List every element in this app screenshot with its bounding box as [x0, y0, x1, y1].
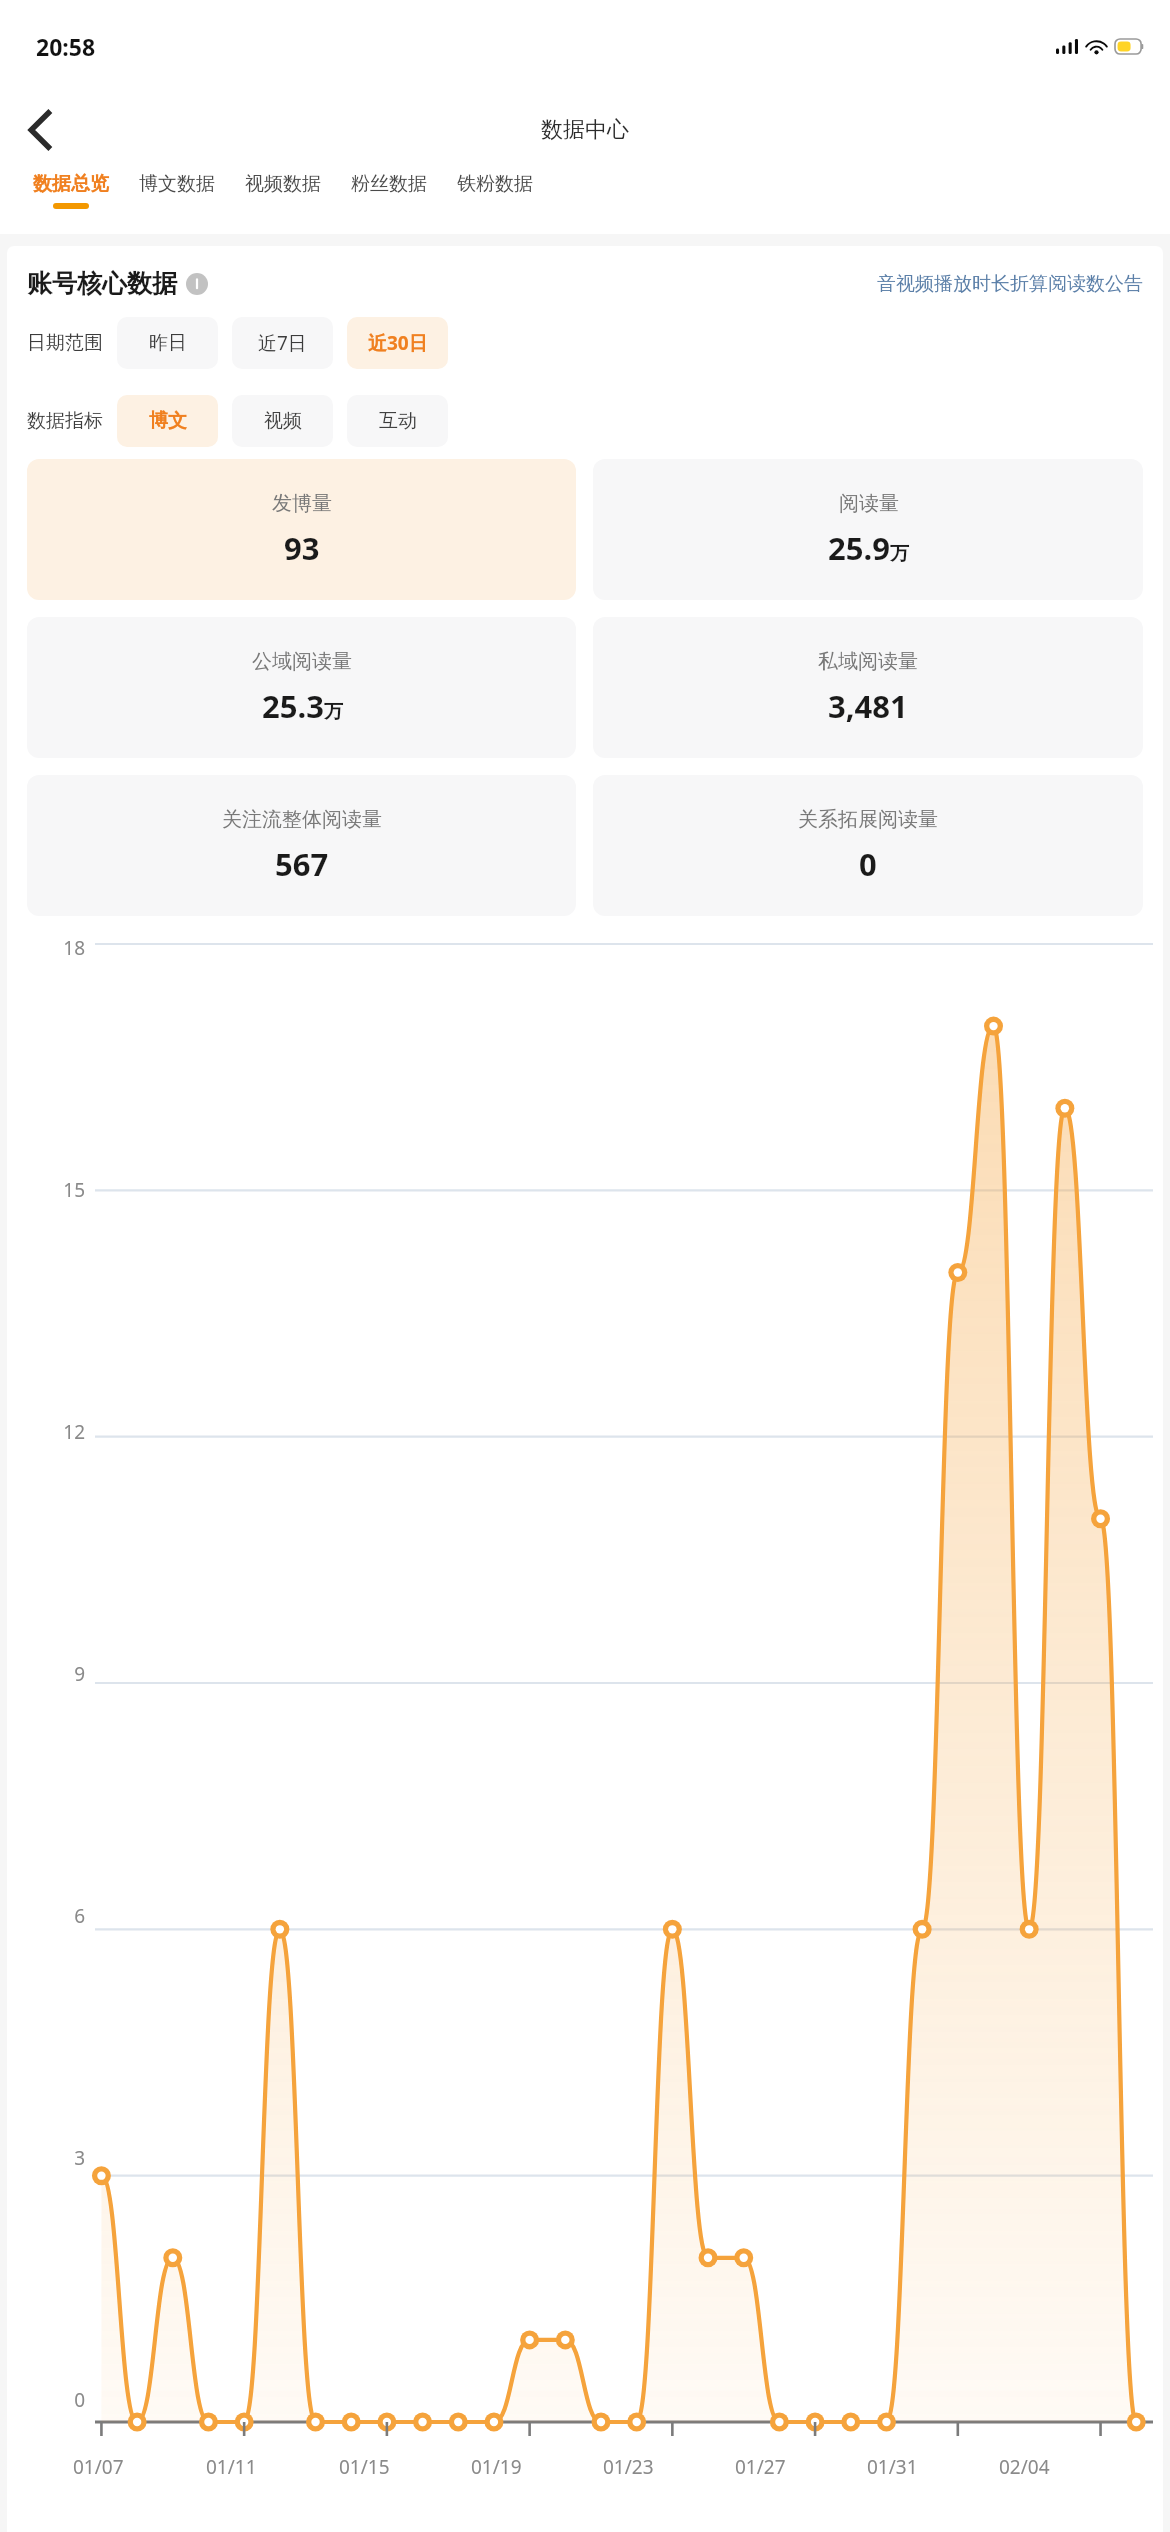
- staticText: 账号核心数据: [27, 268, 177, 299]
- staticText: 0: [859, 843, 877, 885]
- staticText: 25.3: [262, 685, 324, 727]
- staticText: 阅读量: [839, 491, 899, 516]
- button[interactable]: 发博量: [27, 459, 576, 600]
- staticText: 02/04: [999, 2454, 1050, 2480]
- staticText: 01/11: [206, 2454, 257, 2480]
- staticText: 近30日: [368, 330, 428, 356]
- button[interactable]: 阅读量: [593, 459, 1143, 600]
- button[interactable]: 互动: [347, 395, 448, 447]
- staticText: 12: [63, 1419, 85, 1445]
- button[interactable]: 博文: [117, 395, 218, 447]
- staticText: 关注流整体阅读量: [222, 807, 382, 832]
- staticText: 3: [74, 2145, 85, 2171]
- staticText: 567: [275, 843, 329, 885]
- staticText: 01/15: [339, 2454, 390, 2480]
- button[interactable]: 昨日: [117, 317, 218, 369]
- staticText: 视频数据: [245, 172, 321, 196]
- button[interactable]: 数据总览: [18, 172, 124, 209]
- staticText: 01/23: [603, 2454, 654, 2480]
- staticText: 20:58: [36, 31, 96, 62]
- staticText: 01/19: [471, 2454, 522, 2480]
- staticText: 公域阅读量: [252, 649, 352, 674]
- button[interactable]: 铁粉数据: [442, 172, 548, 203]
- staticText: 0: [74, 2387, 85, 2413]
- staticText: 私域阅读量: [818, 649, 918, 674]
- button[interactable]: Back: [12, 102, 68, 158]
- button[interactable]: 私域阅读量: [593, 617, 1143, 758]
- staticText: 数据总览: [33, 172, 109, 196]
- staticText: 发博量: [272, 491, 332, 516]
- staticText: 粉丝数据: [351, 172, 427, 196]
- button[interactable]: 博文数据: [124, 172, 230, 203]
- staticText: 18: [63, 935, 85, 961]
- staticText: 数据指标: [27, 409, 103, 433]
- staticText: 6: [74, 1903, 85, 1929]
- staticText: 25.9: [828, 527, 890, 569]
- staticText: 万: [890, 542, 909, 566]
- staticText: 01/31: [867, 2454, 918, 2480]
- staticText: 9: [74, 1661, 85, 1687]
- staticText: 15: [63, 1177, 85, 1203]
- staticText: 博文数据: [139, 172, 215, 196]
- staticText: 近7日: [258, 330, 307, 356]
- staticText: 3,481: [828, 685, 908, 727]
- button[interactable]: Info: [186, 273, 208, 295]
- staticText: 互动: [379, 409, 417, 433]
- staticText: 万: [324, 700, 343, 724]
- staticText: 博文: [149, 409, 187, 433]
- staticText: 昨日: [149, 331, 187, 355]
- staticText: 数据中心: [541, 116, 629, 144]
- button[interactable]: 视频数据: [230, 172, 336, 203]
- staticText: 关系拓展阅读量: [798, 807, 938, 832]
- button[interactable]: 近7日: [232, 317, 333, 369]
- staticText: 铁粉数据: [457, 172, 533, 196]
- button[interactable]: 音视频播放时长折算阅读数公告: [877, 272, 1143, 296]
- button[interactable]: 公域阅读量: [27, 617, 576, 758]
- staticText: 日期范围: [27, 331, 103, 355]
- button[interactable]: 近30日: [347, 317, 448, 369]
- staticText: 01/07: [73, 2454, 124, 2480]
- staticText: 93: [284, 527, 320, 569]
- button[interactable]: 粉丝数据: [336, 172, 442, 203]
- button[interactable]: 关注流整体阅读量: [27, 775, 576, 916]
- button[interactable]: 关系拓展阅读量: [593, 775, 1143, 916]
- staticText: 01/27: [735, 2454, 786, 2480]
- staticText: 视频: [264, 409, 302, 433]
- button[interactable]: 视频: [232, 395, 333, 447]
